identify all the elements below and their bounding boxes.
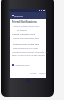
button[interactable]: Download over mobile data [13, 43, 39, 46]
staticText: choose how notifications move [13, 37, 40, 39]
staticText: allow background sync usage [13, 47, 38, 49]
button[interactable]: Navigate up [10, 12, 46, 19]
button[interactable]: CANCEL [29, 71, 38, 75]
button[interactable]: Notify me when friends share [13, 25, 40, 28]
button[interactable]: Sample Transition Style [12, 33, 35, 36]
staticText: Agree with terms [15, 64, 30, 66]
staticText: Settings [14, 14, 24, 17]
button[interactable]: ACCEPT [38, 71, 47, 75]
button[interactable]: Home [26, 79, 30, 83]
button[interactable]: 30 minutes [17, 29, 27, 32]
button[interactable]: Navigate up [11, 14, 14, 17]
staticText: ACCEPT [39, 72, 46, 74]
staticText: Friend Notifications [12, 20, 37, 23]
staticText: CANCEL [30, 72, 37, 74]
staticText: Configure upload servers takes time, sti… [12, 51, 49, 57]
button[interactable]: Agree with terms [12, 64, 30, 66]
